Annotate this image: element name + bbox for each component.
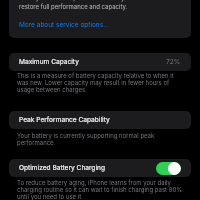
button[interactable]: Peak Performance Capability xyxy=(9,111,191,129)
button[interactable]: More about service options... xyxy=(19,21,109,29)
staticText: battery health. A replacement battery ca… xyxy=(19,0,137,1)
button[interactable]: Maximum Capacity xyxy=(9,53,191,71)
staticText: 72% xyxy=(166,58,181,66)
button[interactable]: battery health. A replacement battery ca… xyxy=(9,0,191,38)
staticText: restore full performance and capacity. xyxy=(19,3,128,10)
staticText: To reduce battery aging, iPhone learns f… xyxy=(17,179,186,200)
staticText: Maximum Capacity xyxy=(19,58,79,66)
button[interactable]: Optimized Battery Charging xyxy=(9,159,191,177)
staticText: Peak Performance Capability xyxy=(19,116,110,124)
staticText: Your battery is currently supporting nor… xyxy=(17,132,186,146)
staticText: This is a measure of battery capacity re… xyxy=(17,72,186,93)
button[interactable]: Optimized Battery Charging xyxy=(156,162,181,175)
staticText: Optimized Battery Charging xyxy=(19,164,105,172)
